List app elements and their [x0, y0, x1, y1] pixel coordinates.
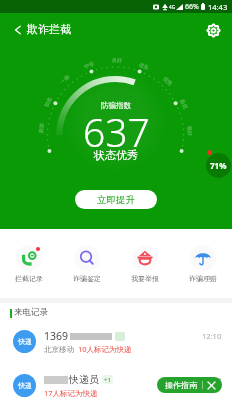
- staticText: 10人标记为快递: [78, 344, 132, 354]
- button[interactable]: 快递: [0, 364, 232, 408]
- staticText: 良好: [112, 57, 122, 63]
- staticText: 中等: [83, 60, 95, 69]
- staticText: 极差: [38, 123, 44, 133]
- button[interactable]: Back: [6, 18, 29, 41]
- staticText: 12:02: [202, 375, 222, 385]
- staticText: 来电记录: [14, 307, 48, 318]
- button[interactable]: 诈骗理赔: [174, 229, 232, 283]
- staticText: 欺诈拦截: [27, 22, 71, 36]
- staticText: 1369: [44, 329, 69, 343]
- staticText: 66%: [185, 2, 199, 12]
- staticText: +1: [104, 376, 111, 384]
- button[interactable]: 立即提升: [75, 190, 157, 209]
- staticText: 诈骗鉴定: [73, 274, 101, 283]
- staticText: 立即提升: [97, 194, 135, 206]
- staticText: 优秀: [162, 75, 174, 87]
- button[interactable]: 操作指南: [157, 377, 222, 393]
- staticText: 诈骗理赔: [189, 274, 217, 283]
- staticText: 拦截记录: [15, 274, 43, 283]
- staticText: 12:10: [202, 331, 222, 341]
- staticText: 14:43: [208, 2, 228, 12]
- button[interactable]: 诈骗鉴定: [58, 229, 116, 283]
- staticText: 操作指南: [165, 380, 197, 390]
- button[interactable]: Memory cleaner: [206, 153, 231, 178]
- staticText: 17人标记为快递: [44, 388, 98, 398]
- staticText: 637: [83, 105, 150, 158]
- button[interactable]: 拦截记录: [0, 229, 58, 283]
- staticText: 4G: [169, 4, 175, 10]
- staticText: 一般: [59, 73, 71, 85]
- staticText: 极好: [187, 126, 193, 136]
- button[interactable]: 我要举报: [116, 229, 174, 283]
- staticText: 状态优秀: [94, 148, 138, 162]
- staticText: 优良: [138, 61, 150, 71]
- staticText: 极优: [179, 98, 189, 110]
- button[interactable]: Settings: [201, 18, 225, 42]
- staticText: 快递员: [69, 373, 99, 386]
- staticText: 北京移动: [44, 345, 74, 354]
- staticText: 较差: [43, 96, 53, 108]
- staticText: 防骗指数: [101, 101, 131, 110]
- button[interactable]: 快递: [0, 320, 232, 364]
- staticText: 快递: [18, 337, 32, 346]
- staticText: 快递: [18, 381, 32, 390]
- staticText: 我要举报: [131, 274, 159, 283]
- staticText: 71%: [210, 160, 227, 171]
